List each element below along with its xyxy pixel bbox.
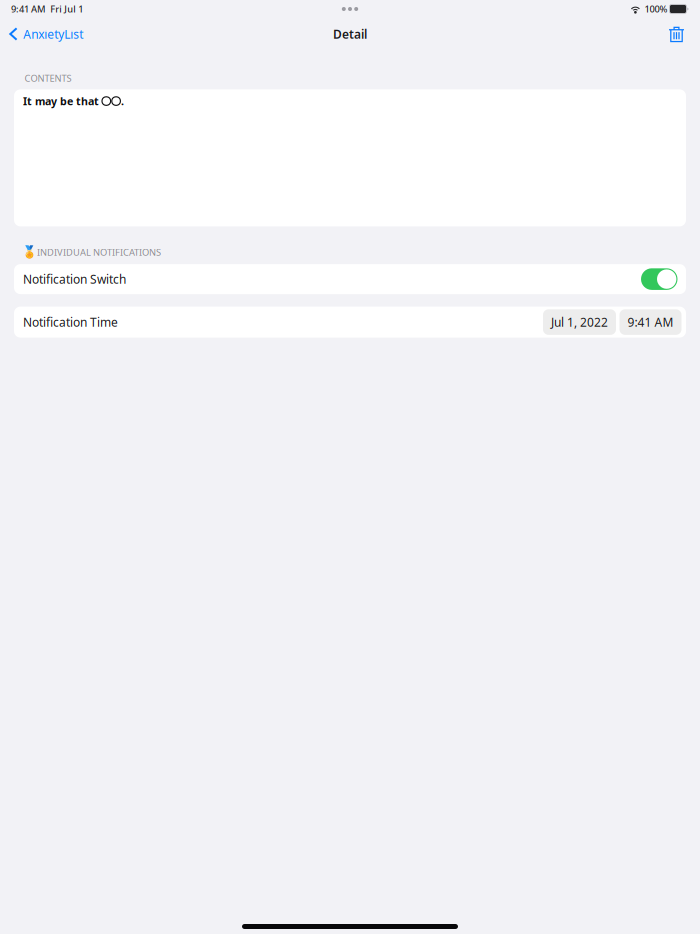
staticText: Notification Switch (23, 271, 126, 287)
staticText: 🏅 (22, 245, 37, 259)
staticText: CONTENTS (24, 72, 71, 84)
staticText: Jul 1, 2022 (551, 314, 608, 330)
staticText: Detail (333, 26, 367, 42)
button[interactable]: Notification Time (14, 307, 686, 338)
staticText: 9:41 AM (11, 3, 46, 15)
staticText: Notification Time (23, 314, 118, 330)
button[interactable]: Notification Switch (14, 264, 686, 294)
staticText: . (121, 94, 124, 108)
staticText: It may be that (23, 94, 102, 108)
button[interactable]: AnxietyList (0, 21, 91, 47)
staticText: 9:41 AM (627, 314, 673, 330)
staticText: INDIVIDUAL NOTIFICATIONS (37, 246, 161, 258)
button[interactable]: Delete (661, 20, 692, 48)
staticText: 100% (645, 3, 668, 15)
staticText: AnxietyList (23, 26, 83, 42)
staticText: Fri Jul 1 (50, 3, 83, 15)
